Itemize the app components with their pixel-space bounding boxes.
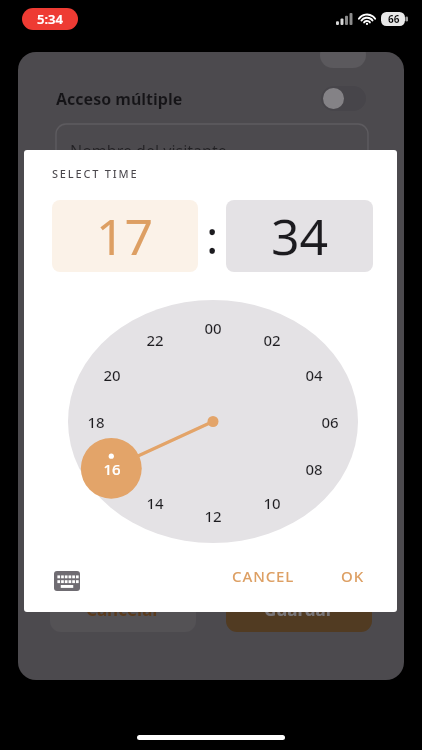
staticText: 04 — [305, 365, 323, 385]
staticText: 66 — [388, 12, 400, 26]
staticText: 20 — [103, 365, 121, 385]
button[interactable]: OK — [331, 558, 375, 594]
button[interactable]: Guardar — [226, 587, 372, 632]
staticText: Acceso múltiple — [56, 88, 183, 110]
staticText: 12 — [204, 506, 222, 526]
staticText: Cancelar — [86, 598, 160, 621]
staticText: 10 — [263, 493, 281, 513]
staticText: 34 — [271, 202, 329, 270]
staticText: OK — [341, 566, 365, 586]
staticText: 16 — [103, 459, 121, 479]
staticText: SELECT TIME — [52, 166, 139, 181]
button[interactable]: 00 — [68, 300, 358, 543]
button[interactable]: Switch to text input — [52, 568, 82, 594]
staticText: 5:34 — [37, 10, 63, 28]
button[interactable]: 17 — [52, 200, 198, 272]
staticText: Guardar — [264, 598, 334, 621]
staticText: Nombre del visitante — [70, 140, 227, 162]
staticText: 18 — [87, 412, 105, 432]
staticText: 08 — [305, 459, 323, 479]
button[interactable]: CANCEL — [222, 558, 305, 594]
staticText: CANCEL — [232, 566, 295, 586]
staticText: 22 — [146, 330, 164, 350]
staticText: 14 — [146, 493, 164, 513]
staticText: 06 — [321, 412, 339, 432]
staticText: 02 — [263, 330, 281, 350]
button[interactable]: Cancelar — [50, 587, 196, 632]
staticText: 17 — [96, 202, 154, 270]
staticText: : — [206, 205, 219, 268]
button[interactable]: 34 — [226, 200, 373, 272]
button[interactable] — [321, 86, 366, 111]
staticText: 00 — [204, 318, 222, 338]
